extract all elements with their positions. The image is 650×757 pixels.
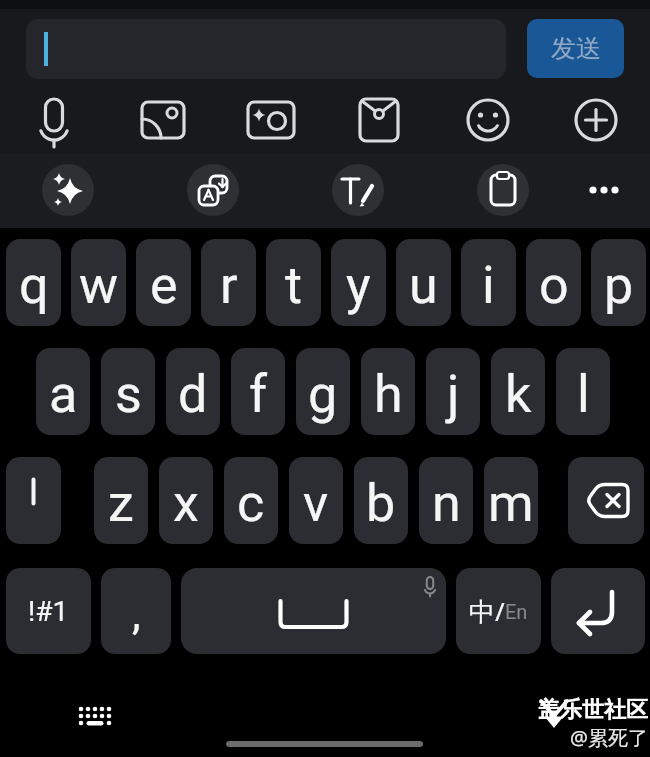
staticText: u — [409, 255, 438, 316]
button[interactable]: s — [101, 348, 155, 435]
button[interactable]: k — [491, 348, 545, 435]
button[interactable]: f — [231, 348, 285, 435]
staticText: v — [303, 473, 329, 534]
button[interactable] — [181, 568, 446, 654]
button[interactable] — [26, 92, 82, 148]
button[interactable]: r — [201, 239, 256, 326]
button[interactable]: !#1 — [6, 568, 91, 654]
button[interactable] — [551, 568, 645, 654]
staticText: g — [308, 364, 338, 425]
button[interactable]: w — [71, 239, 126, 326]
staticText: f — [249, 364, 268, 425]
staticText: o — [539, 255, 569, 316]
staticText: , — [132, 588, 141, 640]
staticText: p — [604, 255, 634, 316]
button[interactable] — [40, 162, 96, 218]
button[interactable] — [135, 92, 191, 148]
staticText: 发送 — [551, 33, 601, 64]
staticText: b — [366, 473, 396, 534]
button[interactable]: m — [484, 457, 538, 544]
button[interactable]: x — [159, 457, 213, 544]
button[interactable]: o — [526, 239, 581, 326]
button[interactable] — [568, 457, 644, 544]
button[interactable]: a — [36, 348, 90, 435]
staticText: d — [178, 364, 208, 425]
staticText: y — [346, 255, 371, 316]
button[interactable] — [243, 92, 299, 148]
button[interactable]: u — [396, 239, 451, 326]
staticText: c — [237, 473, 265, 534]
staticText: k — [505, 364, 532, 425]
staticText: n — [432, 473, 461, 534]
staticText: h — [374, 364, 403, 425]
button[interactable]: n — [419, 457, 473, 544]
staticText: i — [482, 255, 495, 316]
staticText: a — [49, 364, 78, 425]
staticText: r — [220, 255, 238, 316]
button[interactable]: t — [266, 239, 321, 326]
staticText: !#1 — [28, 595, 69, 628]
button[interactable]: q — [6, 239, 61, 326]
button[interactable]: v — [289, 457, 343, 544]
staticText: z — [108, 473, 134, 534]
button[interactable]: l — [556, 348, 610, 435]
staticText: m — [488, 473, 534, 534]
staticText: e — [150, 255, 178, 316]
button[interactable] — [26, 19, 506, 79]
button[interactable]: c — [224, 457, 278, 544]
staticText: 中/ — [469, 593, 505, 629]
button[interactable] — [460, 92, 516, 148]
button[interactable] — [568, 92, 624, 148]
staticText: l — [577, 364, 590, 425]
button[interactable] — [185, 162, 241, 218]
staticText: s — [115, 364, 142, 425]
staticText: En — [505, 600, 528, 623]
button[interactable]: 中/ — [456, 568, 541, 654]
button[interactable]: d — [166, 348, 220, 435]
staticText: j — [447, 364, 460, 425]
button[interactable] — [72, 698, 118, 734]
button[interactable]: , — [101, 568, 171, 654]
button[interactable]: i — [461, 239, 516, 326]
staticText: 盖乐世社区 — [538, 696, 648, 724]
button[interactable]: e — [136, 239, 191, 326]
button[interactable] — [576, 162, 632, 218]
button[interactable] — [330, 162, 386, 218]
staticText: x — [173, 473, 199, 534]
button[interactable]: j — [426, 348, 480, 435]
button[interactable] — [475, 162, 531, 218]
staticText: t — [285, 255, 303, 316]
button[interactable]: g — [296, 348, 350, 435]
button[interactable] — [6, 457, 61, 544]
button[interactable]: y — [331, 239, 386, 326]
button[interactable]: h — [361, 348, 415, 435]
button[interactable]: b — [354, 457, 408, 544]
button[interactable]: p — [591, 239, 646, 326]
button[interactable]: z — [94, 457, 148, 544]
staticText: @累死了 — [570, 724, 648, 751]
staticText: w — [79, 255, 119, 316]
button[interactable]: 发送 — [527, 19, 624, 78]
staticText: q — [19, 255, 49, 316]
button[interactable] — [351, 92, 407, 148]
